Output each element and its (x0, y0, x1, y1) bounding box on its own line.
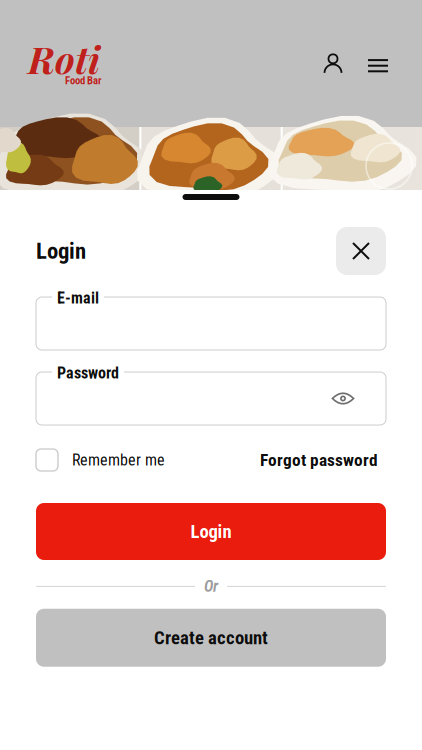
button[interactable]: Account (311, 41, 355, 85)
staticText: Remember me (72, 451, 165, 469)
button[interactable]: Remember me (36, 449, 165, 471)
button[interactable]: Show password (328, 383, 358, 413)
staticText: Or (204, 577, 218, 596)
button[interactable]: Menu (356, 41, 400, 85)
button[interactable]: Create account (36, 609, 386, 667)
staticText: Login (36, 238, 86, 264)
button[interactable]: Login (36, 503, 386, 560)
staticText: Food Bar (65, 74, 102, 87)
staticText: Forgot password (260, 450, 378, 470)
staticText: Password (57, 364, 119, 382)
staticText: Create account (154, 627, 268, 649)
staticText: Login (190, 521, 231, 542)
staticText: Roti (28, 33, 100, 83)
button[interactable]: Forgot password (260, 450, 386, 470)
button[interactable]: Close (336, 227, 386, 275)
staticText: E-mail (57, 289, 99, 307)
